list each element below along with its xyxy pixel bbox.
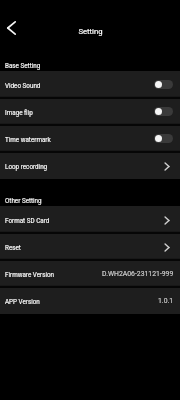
staticText: Video Sound (5, 82, 41, 89)
button[interactable]: Off (154, 107, 173, 116)
button[interactable]: Reset (0, 233, 180, 260)
staticText: 1.0.1 (158, 297, 174, 305)
button[interactable]: Format SD Card (0, 206, 180, 233)
staticText: Setting (78, 27, 103, 36)
staticText: D.WH2A06-231121-999 (102, 270, 174, 278)
staticText: Time watermark (5, 136, 51, 143)
button[interactable]: Back (0, 16, 22, 40)
staticText: Base Setting (5, 62, 41, 69)
button[interactable]: Off (154, 134, 173, 143)
button[interactable]: Video Sound (0, 71, 180, 98)
button[interactable]: Off (154, 80, 173, 89)
staticText: Firmware Version (5, 271, 54, 278)
button[interactable]: Loop recording (0, 152, 180, 179)
staticText: Image flip (5, 109, 33, 116)
other: Format SD Card (164, 216, 170, 225)
button[interactable]: Time watermark (0, 125, 180, 152)
other: Loop recording (164, 162, 170, 171)
staticText: APP Version (5, 298, 40, 305)
staticText: Other Setting (5, 197, 42, 204)
button[interactable]: Image flip (0, 98, 180, 125)
staticText: Loop recording (5, 163, 48, 170)
staticText: Reset (5, 244, 21, 251)
button[interactable]: Firmware Version (0, 260, 180, 287)
button[interactable]: APP Version (0, 287, 180, 314)
staticText: Format SD Card (5, 217, 50, 224)
other: Reset (164, 243, 170, 252)
